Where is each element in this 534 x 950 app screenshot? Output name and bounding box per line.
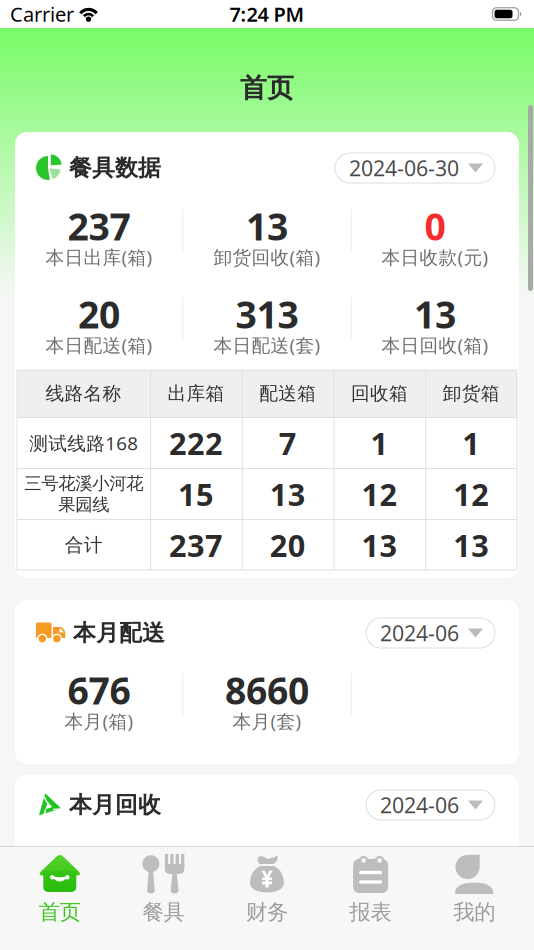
staticText: 首页: [39, 899, 81, 925]
staticText: 20: [270, 525, 306, 565]
staticText: 222: [169, 423, 223, 463]
staticText: 8660: [225, 665, 309, 715]
staticText: 7:24 PM: [229, 1, 304, 27]
staticText: 测试线路168: [29, 431, 138, 455]
button[interactable]: 2024-06: [366, 790, 495, 820]
staticText: 12: [453, 474, 489, 514]
staticText: 13: [246, 201, 288, 251]
button[interactable]: 首页: [8, 854, 112, 925]
staticText: 15: [178, 474, 214, 514]
staticText: Carrier: [10, 1, 74, 27]
staticText: 237: [169, 525, 223, 565]
button[interactable]: 我的: [422, 854, 526, 925]
staticText: 本日回收(箱): [381, 333, 488, 357]
staticText: 13: [361, 525, 397, 565]
staticText: 配送箱: [259, 382, 316, 405]
staticText: 13: [453, 525, 489, 565]
staticText: 回收箱: [351, 382, 408, 405]
staticText: 13: [270, 474, 306, 514]
staticText: 2024-06-30: [349, 154, 459, 182]
staticText: 卸货箱: [443, 382, 500, 405]
staticText: 20: [78, 289, 120, 339]
staticText: 7: [279, 423, 297, 463]
staticText: 本日收款(元): [381, 245, 488, 269]
staticText: 本月回收: [69, 791, 161, 819]
button[interactable]: 报表: [319, 854, 422, 925]
staticText: 237: [67, 201, 130, 251]
button[interactable]: 餐具: [112, 854, 215, 925]
staticText: 13: [414, 289, 456, 339]
staticText: 线路名称: [45, 382, 121, 405]
staticText: 676: [67, 665, 130, 715]
staticText: 餐具: [142, 899, 184, 925]
staticText: 本日配送(箱): [45, 333, 152, 357]
staticText: 2024-06: [380, 791, 459, 819]
button[interactable]: 2024-06-30: [335, 153, 495, 183]
staticText: 三号花溪小河花 果园线: [24, 473, 143, 515]
staticText: 首页: [240, 72, 294, 104]
staticText: 餐具数据: [69, 154, 161, 182]
staticText: 出库箱: [167, 382, 224, 405]
staticText: 本月配送: [73, 619, 165, 647]
staticText: 313: [235, 289, 298, 339]
staticText: 报表: [350, 899, 392, 925]
staticText: 2024-06: [380, 619, 459, 647]
staticText: 12: [361, 474, 397, 514]
staticText: 本日配送(套): [213, 333, 320, 357]
staticText: 财务: [246, 899, 288, 925]
staticText: 1: [462, 423, 480, 463]
staticText: 本月(箱): [64, 709, 133, 733]
staticText: 合计: [64, 533, 102, 556]
staticText: 卸货回收(箱): [213, 245, 320, 269]
button[interactable]: 财务: [215, 854, 319, 925]
staticText: 本月(套): [232, 709, 301, 733]
staticText: 0: [424, 201, 445, 251]
staticText: 我的: [453, 899, 495, 925]
staticText: 本日出库(箱): [45, 245, 152, 269]
button[interactable]: 2024-06: [366, 618, 495, 648]
staticText: 1: [370, 423, 388, 463]
